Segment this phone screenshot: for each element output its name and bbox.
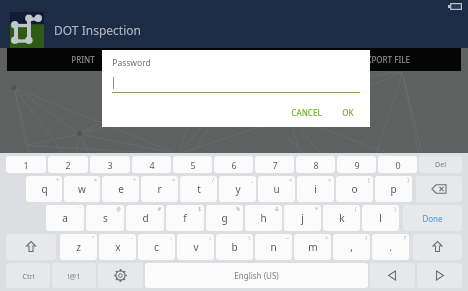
staticText: y — [235, 182, 241, 196]
staticText: PRINT — [71, 54, 95, 65]
button[interactable]: r — [141, 176, 178, 202]
button[interactable]: o — [336, 176, 373, 202]
button[interactable]: m — [294, 234, 331, 260]
staticText: Del — [435, 160, 446, 170]
button[interactable]: Done — [403, 205, 462, 231]
staticText: l — [379, 211, 382, 225]
button[interactable]: . — [372, 234, 409, 260]
button[interactable]: OK — [336, 104, 360, 121]
button[interactable]: 1 — [6, 156, 46, 173]
staticText: - — [131, 235, 133, 241]
button[interactable]: PRINT — [7, 48, 159, 71]
staticText: English (US) — [234, 270, 279, 281]
staticText: 3 — [107, 159, 113, 171]
button[interactable]: v — [177, 234, 214, 260]
staticText: [ — [368, 177, 370, 183]
staticText: ! — [365, 235, 367, 241]
button[interactable]: Move right — [417, 263, 462, 288]
staticText: . — [389, 240, 392, 254]
button[interactable]: d — [126, 205, 164, 231]
button[interactable]: Ctrl — [6, 263, 50, 288]
staticText: + — [56, 177, 59, 183]
staticText: Password — [112, 57, 151, 69]
staticText: _ — [251, 177, 253, 183]
button[interactable]: k — [323, 205, 360, 231]
button[interactable]: j — [284, 205, 321, 231]
button[interactable]: SEND — [159, 48, 310, 71]
button[interactable]: w — [64, 176, 100, 202]
staticText: o — [351, 182, 358, 196]
staticText: h — [260, 211, 267, 225]
button[interactable]: 4 — [132, 156, 171, 173]
button[interactable]: 6 — [214, 156, 253, 173]
button[interactable]: x — [99, 234, 136, 260]
staticText: r — [157, 182, 162, 196]
staticText: 2 — [65, 159, 71, 171]
staticText: w — [78, 182, 86, 196]
button[interactable]: u — [258, 176, 295, 202]
button[interactable]: 5 — [173, 156, 212, 173]
button[interactable]: h — [245, 205, 282, 231]
button[interactable]: f — [166, 205, 204, 231]
button[interactable]: Del — [419, 156, 462, 173]
button[interactable]: a — [46, 205, 84, 231]
button[interactable]: c — [138, 234, 175, 260]
button[interactable]: b — [216, 234, 253, 260]
button[interactable]: English (US) — [145, 263, 368, 288]
button[interactable]: 9 — [337, 156, 376, 173]
staticText: / — [212, 177, 214, 183]
staticText: ( — [355, 206, 357, 212]
staticText: q — [41, 182, 48, 196]
staticText: Done — [422, 213, 443, 224]
button[interactable]: p — [375, 176, 412, 202]
staticText: EXPORT FILE — [362, 54, 410, 65]
button[interactable]: 3 — [90, 156, 130, 173]
staticText: ^ — [325, 235, 328, 241]
staticText: ~ — [286, 235, 289, 241]
button[interactable]: y — [219, 176, 256, 202]
staticText: ! — [248, 235, 250, 241]
button[interactable]: n — [255, 234, 292, 260]
button[interactable]: Settings — [98, 263, 143, 288]
button[interactable]: t — [180, 176, 217, 202]
staticText: a — [62, 211, 68, 225]
staticText: Ctrl — [22, 271, 35, 281]
staticText: z — [76, 240, 81, 254]
staticText: x — [115, 240, 121, 254]
staticText: % — [236, 206, 240, 212]
button[interactable]: Shift — [413, 234, 462, 260]
button[interactable] — [112, 77, 360, 93]
staticText: g — [221, 211, 228, 225]
staticText: $ — [198, 206, 201, 212]
staticText: ' — [79, 206, 81, 212]
button[interactable]: CANCEL — [285, 104, 328, 121]
staticText: 1 — [23, 159, 29, 171]
button[interactable]: Move left — [370, 263, 415, 288]
staticText: b — [231, 240, 238, 254]
button[interactable]: s — [86, 205, 124, 231]
button[interactable]: 7 — [255, 156, 294, 173]
button[interactable]: , — [333, 234, 370, 260]
staticText: DOT Inspection — [54, 22, 141, 38]
staticText: i — [314, 182, 317, 196]
button[interactable]: !@1 — [52, 263, 96, 288]
button[interactable]: z — [60, 234, 97, 260]
button[interactable]: 8 — [296, 156, 335, 173]
staticText: ÷ — [133, 177, 136, 183]
button[interactable]: 2 — [48, 156, 88, 173]
button[interactable]: EXPORT FILE — [310, 48, 461, 71]
button[interactable]: 0 — [378, 156, 417, 173]
button[interactable]: Shift — [6, 234, 56, 260]
staticText: , — [350, 240, 353, 254]
staticText: !@1 — [67, 271, 81, 281]
button[interactable]: e — [102, 176, 139, 202]
staticText: 8 — [313, 159, 319, 171]
button[interactable]: Backspace — [416, 176, 462, 202]
button[interactable]: g — [206, 205, 243, 231]
button[interactable]: q — [26, 176, 62, 202]
staticText: d — [142, 211, 149, 225]
button[interactable]: l — [362, 205, 399, 231]
button[interactable]: i — [297, 176, 334, 202]
staticText: ; — [209, 235, 211, 241]
staticText: ] — [407, 177, 409, 183]
